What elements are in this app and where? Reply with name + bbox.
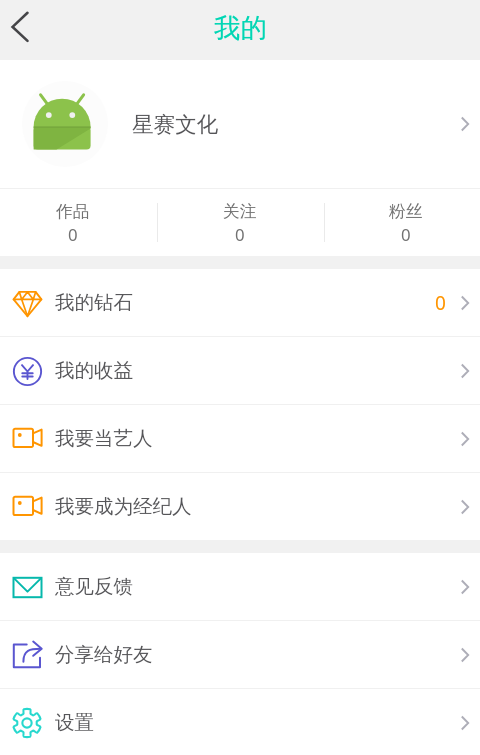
button[interactable]: 我的钻石 — [0, 269, 480, 336]
button[interactable]: 我要成为经纪人 — [0, 473, 480, 540]
staticText: 设置 — [55, 710, 94, 735]
button[interactable]: 意见反馈 — [0, 553, 480, 620]
button[interactable]: 作品 — [18, 189, 128, 256]
staticText: 关注 — [223, 201, 257, 222]
button[interactable]: 关注 — [185, 189, 295, 256]
staticText: 我的收益 — [55, 358, 133, 383]
staticText: 我要当艺人 — [55, 426, 153, 451]
staticText: 我的 — [214, 11, 267, 44]
button[interactable]: 设置 — [0, 689, 480, 755]
button[interactable]: 分享给好友 — [0, 621, 480, 688]
staticText: 0 — [235, 223, 245, 246]
button[interactable]: 我要当艺人 — [0, 405, 480, 472]
staticText: 意见反馈 — [55, 574, 133, 599]
button[interactable]: Back — [0, 0, 52, 60]
staticText: 0 — [435, 290, 446, 316]
staticText: 我要成为经纪人 — [55, 494, 192, 519]
staticText: 粉丝 — [389, 201, 423, 222]
staticText: 我的钻石 — [55, 290, 133, 315]
staticText: 0 — [401, 223, 411, 246]
staticText: 0 — [68, 223, 78, 246]
staticText: 星赛文化 — [132, 111, 219, 138]
staticText: 作品 — [56, 201, 90, 222]
button[interactable]: 粉丝 — [351, 189, 461, 256]
staticText: 分享给好友 — [55, 642, 153, 667]
button[interactable]: 我的收益 — [0, 337, 480, 404]
button[interactable]: 星赛文化 — [0, 60, 480, 188]
